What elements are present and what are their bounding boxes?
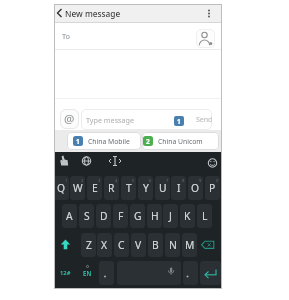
staticText: 2 — [146, 137, 150, 146]
button[interactable]: EN — [78, 261, 97, 285]
button[interactable]: K — [180, 204, 195, 228]
staticText: EN — [83, 269, 92, 277]
staticText: 4 — [115, 178, 118, 183]
staticText: New message — [65, 8, 121, 19]
staticText: 6 — [149, 178, 152, 183]
staticText: 5 — [132, 178, 135, 183]
button[interactable]: D — [96, 204, 111, 228]
button[interactable]: @ — [60, 109, 79, 129]
staticText: 1 — [65, 178, 68, 183]
staticText: 1 — [76, 137, 80, 146]
button[interactable] — [99, 261, 114, 285]
button[interactable] — [54, 4, 222, 22]
staticText: 0 — [216, 178, 219, 183]
staticText: L — [202, 209, 208, 223]
button[interactable]: A — [62, 204, 77, 228]
button[interactable]: T — [121, 176, 136, 200]
button[interactable]: G — [130, 204, 145, 228]
button[interactable]: L — [197, 204, 212, 228]
staticText: Q — [57, 181, 66, 195]
button[interactable] — [142, 132, 219, 150]
staticText: N — [169, 238, 177, 252]
staticText: W — [73, 181, 83, 195]
staticText: K — [184, 209, 191, 223]
button[interactable]: P — [205, 176, 220, 200]
staticText: Z — [86, 238, 92, 252]
button[interactable]: Y — [138, 176, 153, 200]
button[interactable]: R — [104, 176, 119, 200]
staticText: H — [151, 209, 159, 223]
button[interactable]: V — [131, 233, 146, 257]
button[interactable] — [196, 233, 222, 257]
staticText: 8 — [182, 178, 185, 183]
staticText: T — [126, 181, 132, 195]
staticText: P — [209, 181, 216, 195]
button[interactable]: Q — [54, 176, 69, 200]
button[interactable]: 12# — [56, 261, 74, 285]
staticText: 9 — [199, 178, 202, 183]
staticText: Send — [196, 115, 213, 125]
staticText: M — [185, 238, 195, 252]
staticText: D — [100, 209, 108, 223]
button[interactable]: J — [163, 204, 178, 228]
button[interactable]: N — [165, 233, 180, 257]
staticText: @ — [64, 111, 75, 127]
staticText: Y — [143, 181, 149, 195]
staticText: To — [62, 31, 71, 41]
staticText: A — [66, 209, 73, 223]
button[interactable] — [200, 261, 221, 285]
button[interactable] — [81, 109, 212, 130]
button[interactable]: H — [147, 204, 162, 228]
button[interactable] — [67, 132, 141, 150]
staticText: Type message — [86, 115, 135, 125]
staticText: R — [108, 181, 115, 195]
staticText: China Mobile — [88, 137, 130, 146]
button[interactable]: U — [155, 176, 170, 200]
button[interactable]: B — [148, 233, 163, 257]
staticText: O — [191, 181, 200, 195]
button[interactable]: I — [171, 176, 186, 200]
staticText: I — [177, 181, 181, 195]
button[interactable]: X — [97, 233, 112, 257]
staticText: J — [169, 209, 172, 223]
button[interactable] — [54, 233, 76, 257]
staticText: 2 — [81, 178, 84, 183]
button[interactable] — [117, 261, 181, 285]
staticText: C — [118, 238, 125, 252]
button[interactable]: C — [114, 233, 129, 257]
button[interactable] — [183, 261, 198, 285]
button[interactable]: E — [87, 176, 102, 200]
staticText: V — [135, 238, 142, 252]
staticText: S — [84, 209, 90, 223]
staticText: U — [159, 181, 167, 195]
staticText: G — [134, 209, 142, 223]
staticText: B — [152, 238, 159, 252]
button[interactable]: M — [182, 233, 197, 257]
button[interactable]: Send — [192, 114, 216, 126]
staticText: X — [101, 238, 108, 252]
button[interactable]: O — [188, 176, 203, 200]
staticText: 7 — [166, 178, 169, 183]
button[interactable]: W — [70, 176, 85, 200]
button[interactable] — [196, 29, 215, 48]
button[interactable]: S — [79, 204, 94, 228]
staticText: E — [92, 181, 98, 195]
staticText: 12# — [60, 269, 71, 277]
button[interactable]: Z — [81, 233, 96, 257]
button[interactable]: F — [113, 204, 128, 228]
staticText: 3 — [98, 178, 101, 183]
staticText: F — [118, 209, 124, 223]
staticText: China Unicom — [158, 137, 203, 146]
staticText: 1 — [177, 117, 181, 126]
